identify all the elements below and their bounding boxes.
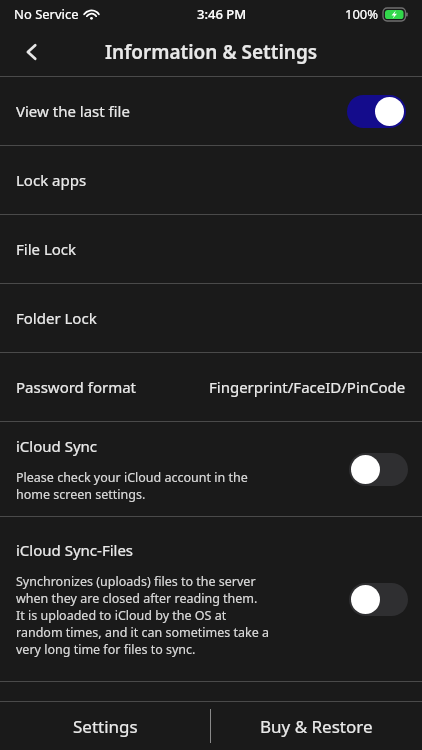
button[interactable]: Switch off bbox=[349, 453, 408, 486]
button[interactable]: View the last file bbox=[0, 77, 422, 145]
button[interactable]: Settings bbox=[0, 702, 210, 750]
staticText: Information & Settings bbox=[105, 39, 318, 65]
staticText: iCloud Sync bbox=[16, 436, 98, 456]
button[interactable]: Switch off bbox=[349, 583, 408, 616]
staticText: 100% bbox=[345, 5, 379, 23]
button[interactable]: Folder Lock bbox=[0, 284, 422, 352]
staticText: Settings bbox=[73, 715, 138, 738]
staticText: File Lock bbox=[16, 239, 77, 259]
staticText: 3:46 PM bbox=[197, 5, 247, 23]
button[interactable]: Switch on bbox=[347, 95, 406, 128]
staticText: Please check your iCloud account in the … bbox=[16, 469, 248, 503]
button[interactable]: Lock apps bbox=[0, 146, 422, 214]
staticText: Password format bbox=[16, 377, 137, 397]
button[interactable]: File Lock bbox=[0, 215, 422, 283]
staticText: iCloud Sync-Files bbox=[16, 540, 134, 560]
staticText: Buy & Restore bbox=[260, 715, 373, 738]
staticText: View the last file bbox=[16, 101, 130, 121]
staticText: No Service bbox=[14, 5, 79, 23]
button[interactable]: Back bbox=[8, 28, 56, 76]
staticText: Synchronizes (uploads) files to the serv… bbox=[16, 573, 270, 658]
button[interactable]: Buy & Restore bbox=[211, 702, 422, 750]
button[interactable]: iCloud Sync bbox=[0, 422, 422, 516]
staticText: Lock apps bbox=[16, 170, 87, 190]
button[interactable]: Password format bbox=[0, 353, 422, 421]
button[interactable]: iCloud Sync-Files bbox=[0, 517, 422, 681]
staticText: Folder Lock bbox=[16, 308, 97, 328]
staticText: Fingerprint/FaceID/PinCode bbox=[209, 377, 406, 397]
